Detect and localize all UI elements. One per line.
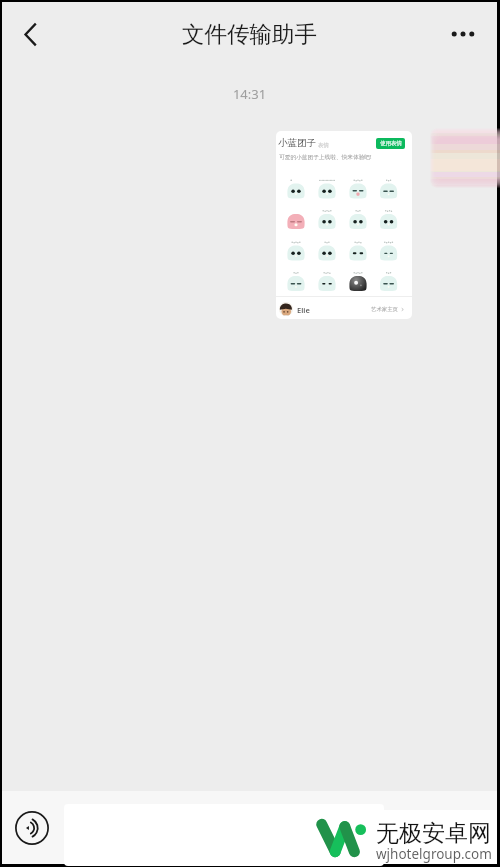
staticText: 可爱的小蓝团子上线啦、快来体验吧! (279, 153, 372, 161)
staticText: 小蓝团子 (278, 137, 316, 149)
staticText: wjhotelgroup.com (376, 845, 492, 863)
staticText: Elie (297, 305, 310, 315)
staticText: 14:31 (2, 85, 497, 103)
button[interactable]: Back (8, 12, 52, 56)
staticText: 表情 (318, 142, 329, 149)
button[interactable]: 小蓝团子 (276, 131, 412, 319)
staticText: 无极安卓网 (376, 819, 491, 848)
button[interactable]: 使用表情 (376, 138, 405, 149)
button[interactable] (64, 804, 384, 866)
button[interactable]: More options (441, 12, 485, 56)
staticText: 文件传输助手 (182, 20, 317, 48)
staticText: 艺术家主页 (371, 306, 398, 313)
staticText: 使用表情 (380, 140, 402, 147)
button[interactable]: Voice input (15, 811, 49, 845)
